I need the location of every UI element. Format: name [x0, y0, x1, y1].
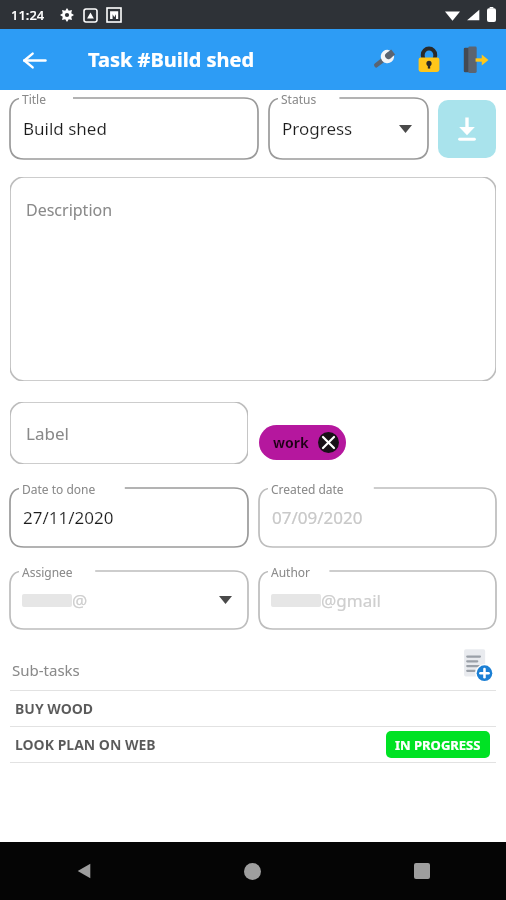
staticText: Title: [22, 91, 46, 107]
button[interactable]: work: [259, 425, 346, 460]
button[interactable]: Recents: [337, 842, 506, 900]
button[interactable]: Settings: [360, 37, 406, 83]
button[interactable]: Save: [438, 100, 496, 158]
button[interactable]: Back: [0, 842, 168, 900]
staticText: 11:24: [11, 6, 45, 24]
staticText: Assignee: [22, 564, 73, 580]
button[interactable]: Title: [10, 98, 258, 159]
button[interactable]: Logout: [452, 37, 498, 83]
staticText: Date to done: [22, 481, 96, 497]
staticText: Label: [26, 422, 69, 445]
staticText: Task #Build shed: [88, 46, 255, 73]
staticText: @: [72, 589, 88, 612]
button[interactable]: Created date: [259, 488, 496, 547]
staticText: LOOK PLAN ON WEB: [15, 735, 156, 754]
staticText: Created date: [271, 481, 344, 497]
staticText: 27/11/2020: [23, 506, 114, 529]
staticText: Description: [26, 199, 113, 221]
button[interactable]: Label: [10, 402, 248, 464]
staticText: Build shed: [23, 117, 107, 140]
staticText: Author: [271, 564, 311, 580]
button[interactable]: Back: [12, 38, 56, 82]
button[interactable]: Description: [10, 177, 496, 381]
button[interactable]: Status: [269, 98, 428, 159]
button[interactable]: Date to done: [10, 488, 248, 547]
button[interactable]: Assignee: [10, 571, 248, 629]
staticText: Progress: [282, 117, 353, 140]
button[interactable]: Home: [168, 842, 337, 900]
button[interactable]: Lock: [406, 37, 452, 83]
staticText: Sub-tasks: [12, 660, 80, 680]
staticText: 07/09/2020: [272, 506, 363, 529]
button[interactable]: BUY WOOD: [10, 690, 496, 726]
staticText: @gmail: [321, 589, 381, 612]
staticText: IN PROGRESS: [395, 736, 481, 754]
staticText: Status: [281, 91, 317, 107]
button[interactable]: Add sub-task: [455, 643, 499, 687]
staticText: BUY WOOD: [15, 699, 94, 718]
staticText: work: [273, 433, 309, 452]
button[interactable]: Author: [259, 571, 496, 629]
button[interactable]: LOOK PLAN ON WEB: [10, 726, 496, 762]
